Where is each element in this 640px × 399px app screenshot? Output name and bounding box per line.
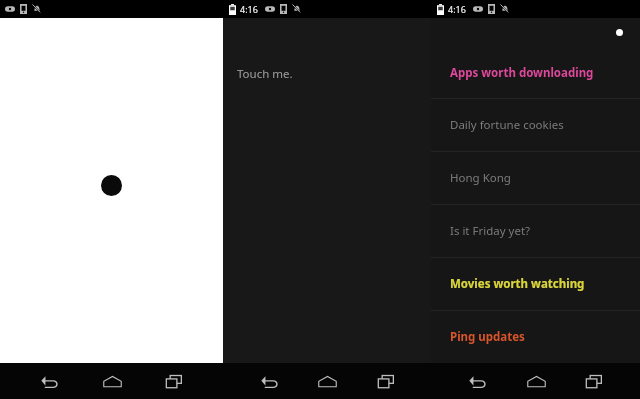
staticText: Hong Kong: [450, 170, 511, 186]
button[interactable]: Back: [246, 364, 292, 398]
button[interactable]: Hong Kong: [431, 152, 640, 204]
button[interactable]: Back: [454, 364, 500, 398]
button[interactable]: Back: [26, 364, 72, 398]
button[interactable]: Recent apps: [571, 364, 617, 398]
button[interactable]: [0, 18, 223, 363]
button[interactable]: Apps worth downloading: [431, 47, 640, 98]
button[interactable]: More options: [616, 29, 623, 36]
staticText: Daily fortune cookies: [450, 117, 564, 133]
staticText: Touch me.: [237, 66, 293, 82]
button[interactable]: Recent apps: [151, 364, 197, 398]
button[interactable]: Touch me.: [223, 18, 431, 363]
button[interactable]: Movies worth watching: [431, 258, 640, 310]
staticText: 4:16: [240, 3, 258, 15]
staticText: Movies worth watching: [450, 276, 585, 292]
staticText: Apps worth downloading: [450, 65, 594, 81]
button[interactable]: Home: [513, 364, 559, 398]
staticText: 4:16: [448, 3, 466, 15]
staticText: Ping updates: [450, 329, 525, 345]
staticText: Is it Friday yet?: [450, 223, 531, 239]
button[interactable]: Recent apps: [363, 364, 409, 398]
button[interactable]: Ping updates: [431, 311, 640, 363]
button[interactable]: Daily fortune cookies: [431, 99, 640, 151]
button[interactable]: Is it Friday yet?: [431, 205, 640, 257]
button[interactable]: Home: [304, 364, 350, 398]
button[interactable]: Home: [89, 364, 135, 398]
